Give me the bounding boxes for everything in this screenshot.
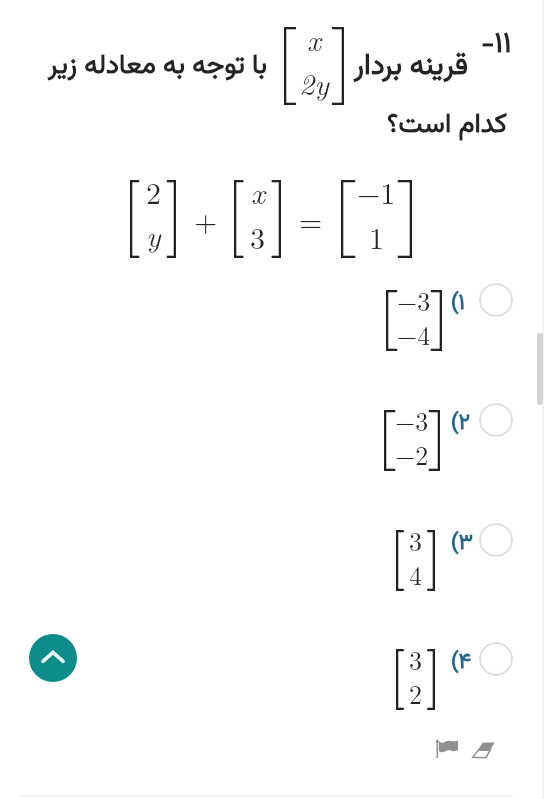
staticText: −2 — [395, 436, 429, 473]
staticText: x — [251, 170, 265, 212]
button[interactable]: Flag question — [431, 735, 461, 765]
button[interactable]: Scroll to top — [29, 634, 77, 682]
staticText: با توجه به معادله زیر — [48, 45, 267, 87]
staticText: 2 — [409, 675, 423, 712]
staticText: -۱۱ — [481, 22, 512, 67]
staticText: 2y — [299, 61, 329, 103]
staticText: 1 — [369, 215, 384, 258]
staticText: (۱ — [451, 286, 465, 320]
staticText: x — [307, 17, 321, 59]
staticText: کدام است؟ — [387, 104, 508, 146]
button[interactable]: Clear answer — [470, 739, 498, 767]
staticText: (۳ — [451, 526, 474, 560]
staticText: y — [146, 213, 161, 255]
staticText: 2 — [146, 170, 161, 213]
button[interactable]: −3 — [0, 360, 546, 480]
staticText: (۴ — [451, 645, 472, 679]
staticText: −3 — [395, 402, 429, 439]
staticText: 4 — [409, 556, 423, 593]
staticText: −3 — [397, 282, 431, 319]
staticText: + — [194, 198, 218, 241]
staticText: (۲ — [451, 406, 471, 440]
staticText: قرینه بردار — [354, 44, 469, 89]
button[interactable]: 3 — [0, 599, 546, 719]
button[interactable]: −3 — [0, 240, 546, 360]
staticText: 3 — [409, 522, 423, 559]
button[interactable]: 3 — [0, 480, 546, 600]
staticText: = — [299, 198, 323, 241]
staticText: 3 — [250, 215, 265, 258]
staticText: 3 — [409, 641, 423, 678]
staticText: −4 — [397, 316, 431, 353]
staticText: −1 — [357, 170, 396, 213]
